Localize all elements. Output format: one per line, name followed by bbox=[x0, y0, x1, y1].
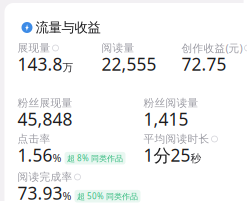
staticText: 45,848 bbox=[17, 107, 72, 130]
staticText: 超 8% 同类作品 bbox=[67, 153, 123, 163]
staticText: % bbox=[62, 189, 71, 203]
staticText: 点击率 bbox=[17, 132, 50, 145]
staticText: % bbox=[52, 151, 61, 165]
staticText: 万 bbox=[62, 61, 73, 74]
staticText: 22,555 bbox=[101, 52, 156, 75]
staticText: 阅读量 bbox=[101, 41, 134, 54]
staticText: 1,415 bbox=[143, 107, 188, 130]
staticText: 平均阅读时长 bbox=[143, 132, 209, 145]
staticText: 粉丝展现量 bbox=[17, 96, 72, 109]
staticText: 1分25 bbox=[143, 143, 190, 166]
staticText: 流量与收益 bbox=[35, 19, 100, 36]
staticText: 展现量 bbox=[17, 41, 50, 54]
staticText: 143.8 bbox=[17, 52, 62, 75]
staticText: 粉丝阅读量 bbox=[143, 96, 198, 109]
staticText: 72.75 bbox=[181, 52, 226, 75]
staticText: 73.93 bbox=[17, 181, 62, 204]
staticText: 阅读完成率 bbox=[17, 170, 72, 183]
staticText: 创作收益(元) bbox=[181, 41, 242, 55]
staticText: 1.56 bbox=[17, 143, 52, 166]
staticText: 秒 bbox=[190, 152, 201, 165]
staticText: 超 50% 同类作品 bbox=[77, 191, 138, 201]
